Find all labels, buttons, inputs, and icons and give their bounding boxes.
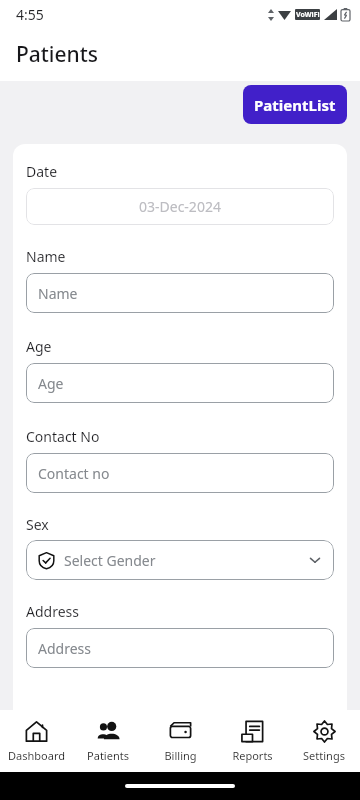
button[interactable]: Age: [26, 363, 334, 403]
other: Settings: [313, 720, 336, 743]
button[interactable]: Select Gender: [26, 540, 334, 580]
staticText: Contact no: [38, 464, 110, 483]
button[interactable]: Dashboard: [0, 716, 72, 767]
staticText: Date: [26, 162, 58, 181]
staticText: Name: [38, 284, 78, 303]
staticText: 03-Dec-2024: [139, 197, 221, 216]
button[interactable]: Billing: [144, 716, 216, 767]
button[interactable]: Patients: [72, 716, 144, 767]
staticText: 4:55: [16, 5, 44, 24]
staticText: VoWiFi: [296, 10, 320, 20]
staticText: Patients: [16, 40, 99, 69]
staticText: Billing: [164, 748, 197, 763]
staticText: Address: [26, 602, 79, 621]
staticText: Dashboard: [8, 748, 65, 763]
button[interactable]: 03-Dec-2024: [26, 188, 334, 225]
staticText: Settings: [303, 748, 345, 763]
staticText: Select Gender: [64, 551, 308, 570]
staticText: Patients: [87, 748, 129, 763]
other: Reports: [241, 720, 264, 743]
staticText: Contact No: [26, 427, 100, 446]
other: Billing: [169, 720, 192, 743]
staticText: Name: [26, 247, 66, 266]
staticText: Age: [26, 337, 52, 356]
button[interactable]: Name: [26, 273, 334, 313]
button[interactable]: PatientList: [243, 85, 347, 124]
staticText: Address: [38, 639, 91, 658]
staticText: Sex: [26, 515, 49, 534]
staticText: PatientList: [254, 95, 336, 115]
button[interactable]: Contact no: [26, 453, 334, 493]
button[interactable]: Settings: [288, 716, 360, 767]
other: Patients: [97, 720, 120, 743]
button[interactable]: Reports: [216, 716, 288, 767]
staticText: Age: [38, 374, 64, 393]
button[interactable]: Address: [26, 628, 334, 668]
staticText: Reports: [232, 748, 273, 763]
other: Dashboard: [25, 720, 48, 743]
